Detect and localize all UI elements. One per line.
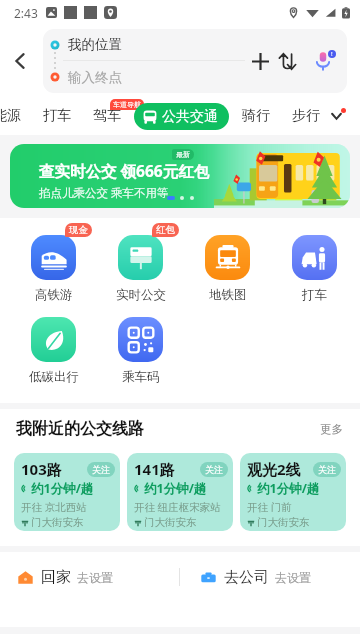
staticText: 约1分钟/趟 bbox=[257, 480, 320, 497]
staticText: 最新 bbox=[176, 150, 190, 159]
staticText: 2:43 bbox=[14, 5, 38, 21]
button[interactable]: 步行 bbox=[281, 100, 331, 132]
staticText: 门大街安东 bbox=[144, 516, 197, 529]
button[interactable]: 地铁图 bbox=[184, 235, 271, 303]
button[interactable]: Swap start and destination bbox=[274, 36, 300, 86]
staticText: 查实时公交 领666元红包 bbox=[39, 160, 210, 181]
staticText: 去设置 bbox=[275, 570, 311, 585]
button[interactable]: Add waypoint bbox=[246, 36, 274, 86]
staticText: 关注 bbox=[318, 464, 336, 475]
staticText: 地铁图 bbox=[209, 287, 247, 303]
staticText: ! bbox=[331, 50, 333, 58]
staticText: 关注 bbox=[92, 464, 110, 475]
button[interactable]: 公共交通 bbox=[134, 103, 229, 130]
staticText: 更多 bbox=[320, 422, 343, 436]
button[interactable]: 现金 bbox=[10, 235, 97, 303]
staticText: 实时公交 bbox=[116, 287, 166, 303]
staticText: 观光2线 bbox=[247, 459, 301, 479]
staticText: 去公司 bbox=[224, 568, 269, 587]
staticText: 乘车码 bbox=[122, 369, 160, 385]
button[interactable]: 141路 bbox=[127, 453, 233, 531]
staticText: 打车 bbox=[43, 107, 71, 125]
button[interactable]: 输入终点 bbox=[43, 61, 255, 93]
staticText: 骑行 bbox=[242, 107, 270, 125]
button[interactable]: 我的位置 bbox=[43, 29, 255, 60]
button[interactable]: Expand travel modes bbox=[331, 99, 342, 133]
button[interactable]: 103路 bbox=[14, 453, 120, 531]
button[interactable]: 打车 bbox=[32, 100, 82, 132]
button[interactable]: 乘车码 bbox=[97, 317, 184, 385]
staticText: 门大街安东 bbox=[257, 516, 310, 529]
staticText: 开往 纽庄枢宋家站 bbox=[134, 500, 221, 514]
staticText: 步行 bbox=[292, 107, 320, 125]
staticText: 输入终点 bbox=[68, 69, 122, 86]
button[interactable]: Back bbox=[0, 25, 40, 97]
button[interactable]: 去公司 bbox=[180, 552, 360, 602]
staticText: 103路 bbox=[21, 459, 62, 479]
button[interactable]: 观光2线 bbox=[240, 453, 346, 531]
staticText: 低碳出行 bbox=[29, 369, 79, 385]
staticText: 约1分钟/趟 bbox=[31, 480, 94, 497]
button[interactable]: 更多 bbox=[317, 418, 346, 440]
staticText: 高铁游 bbox=[35, 287, 73, 303]
staticText: 我的位置 bbox=[68, 36, 122, 53]
button[interactable]: 红包 bbox=[97, 235, 184, 303]
staticText: 能源 bbox=[0, 107, 21, 125]
staticText: 红包 bbox=[156, 224, 175, 236]
staticText: 去设置 bbox=[77, 570, 113, 585]
button[interactable]: 能源 bbox=[0, 100, 32, 132]
staticText: 现金 bbox=[69, 224, 88, 236]
staticText: 关注 bbox=[205, 464, 223, 475]
staticText: 开往 京北西站 bbox=[21, 500, 87, 514]
staticText: 掐点儿乘公交 乘车不用等 bbox=[39, 185, 169, 201]
button[interactable]: 查实时公交 领666元红包 bbox=[10, 144, 350, 208]
staticText: 约1分钟/趟 bbox=[144, 480, 207, 497]
staticText: 开往 门前 bbox=[247, 500, 292, 514]
button[interactable]: 回家 bbox=[0, 552, 179, 602]
staticText: 141路 bbox=[134, 459, 175, 479]
staticText: 打车 bbox=[302, 287, 327, 303]
button[interactable]: 驾车 bbox=[82, 100, 132, 132]
button[interactable]: 骑行 bbox=[231, 100, 281, 132]
staticText: 公共交通 bbox=[162, 108, 218, 126]
staticText: 门大街安东 bbox=[31, 516, 84, 529]
button[interactable]: 打车 bbox=[271, 235, 358, 303]
staticText: 回家 bbox=[41, 568, 71, 587]
staticText: 车道导航 bbox=[113, 100, 141, 109]
button[interactable]: 低碳出行 bbox=[10, 317, 97, 385]
button[interactable]: Voice search bbox=[300, 36, 346, 86]
staticText: 我附近的公交线路 bbox=[16, 419, 144, 439]
staticText: 驾车 bbox=[93, 107, 121, 125]
